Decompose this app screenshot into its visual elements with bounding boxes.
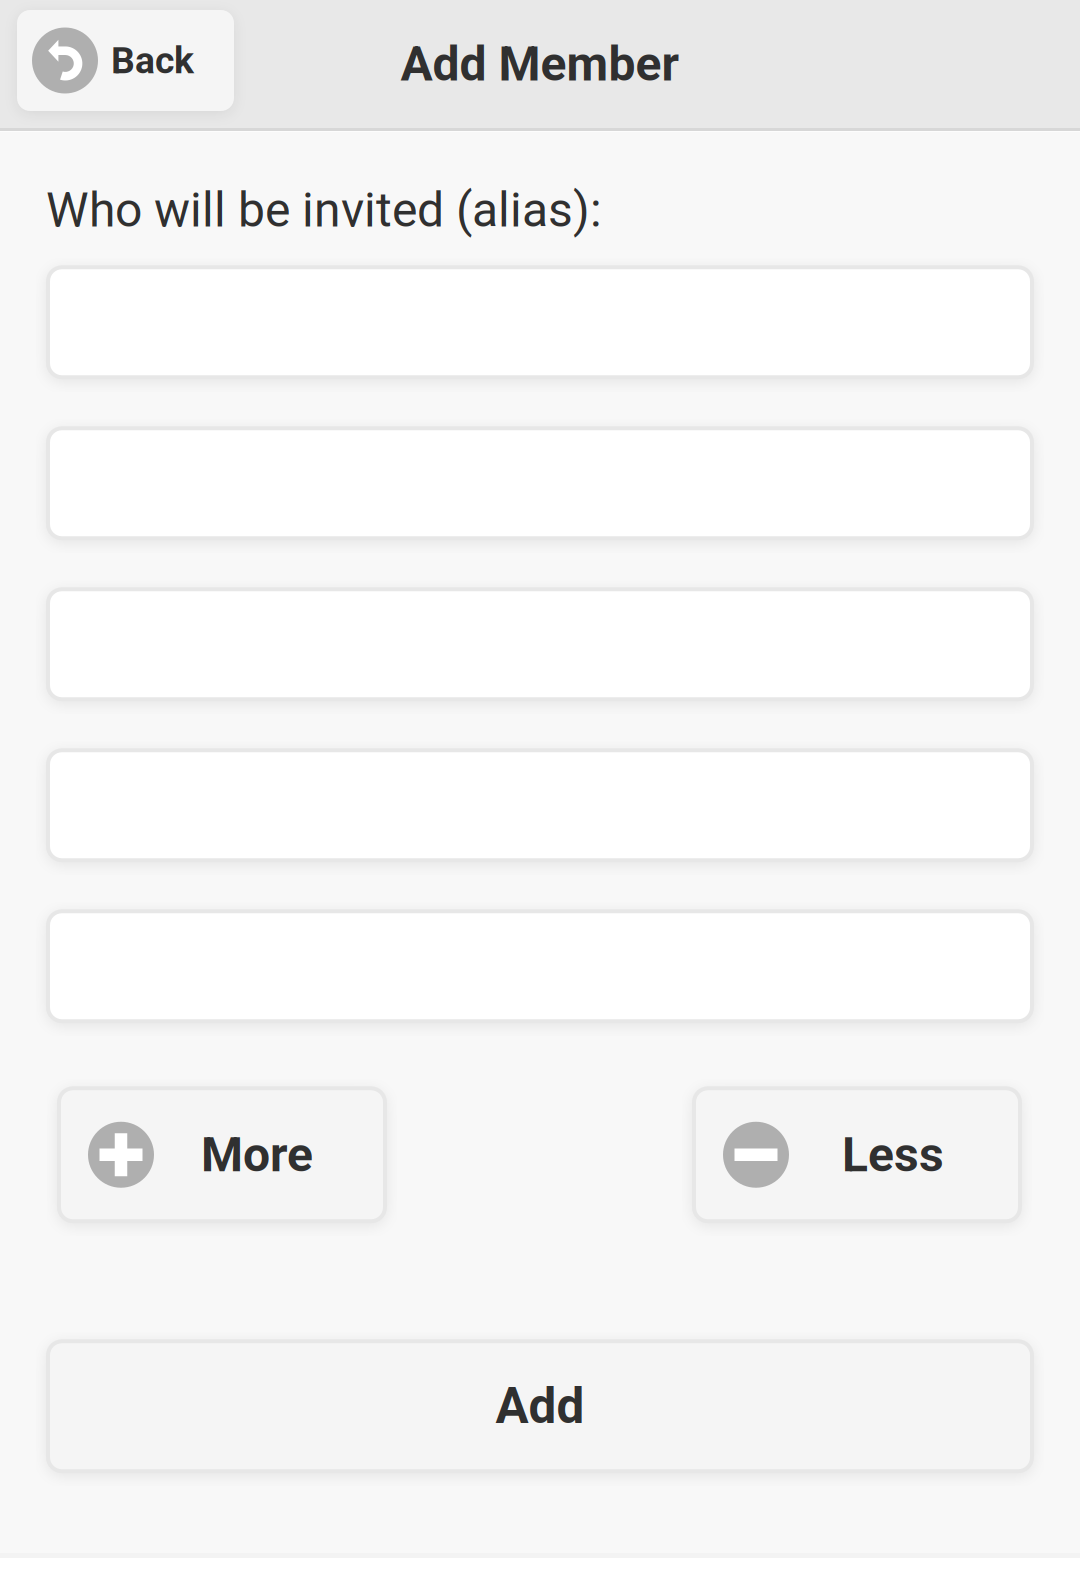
button[interactable]: Add <box>48 1341 1032 1471</box>
staticText: Back <box>111 39 194 82</box>
button[interactable]: Less <box>694 1088 1020 1221</box>
staticText: Add <box>495 1377 584 1435</box>
staticText: Less <box>842 1127 944 1183</box>
staticText: Add Member <box>400 36 679 92</box>
button[interactable]: More <box>59 1088 385 1221</box>
staticText: Who will be invited (alias): <box>46 182 602 238</box>
button[interactable]: Back <box>17 10 234 111</box>
staticText: More <box>201 1127 313 1183</box>
